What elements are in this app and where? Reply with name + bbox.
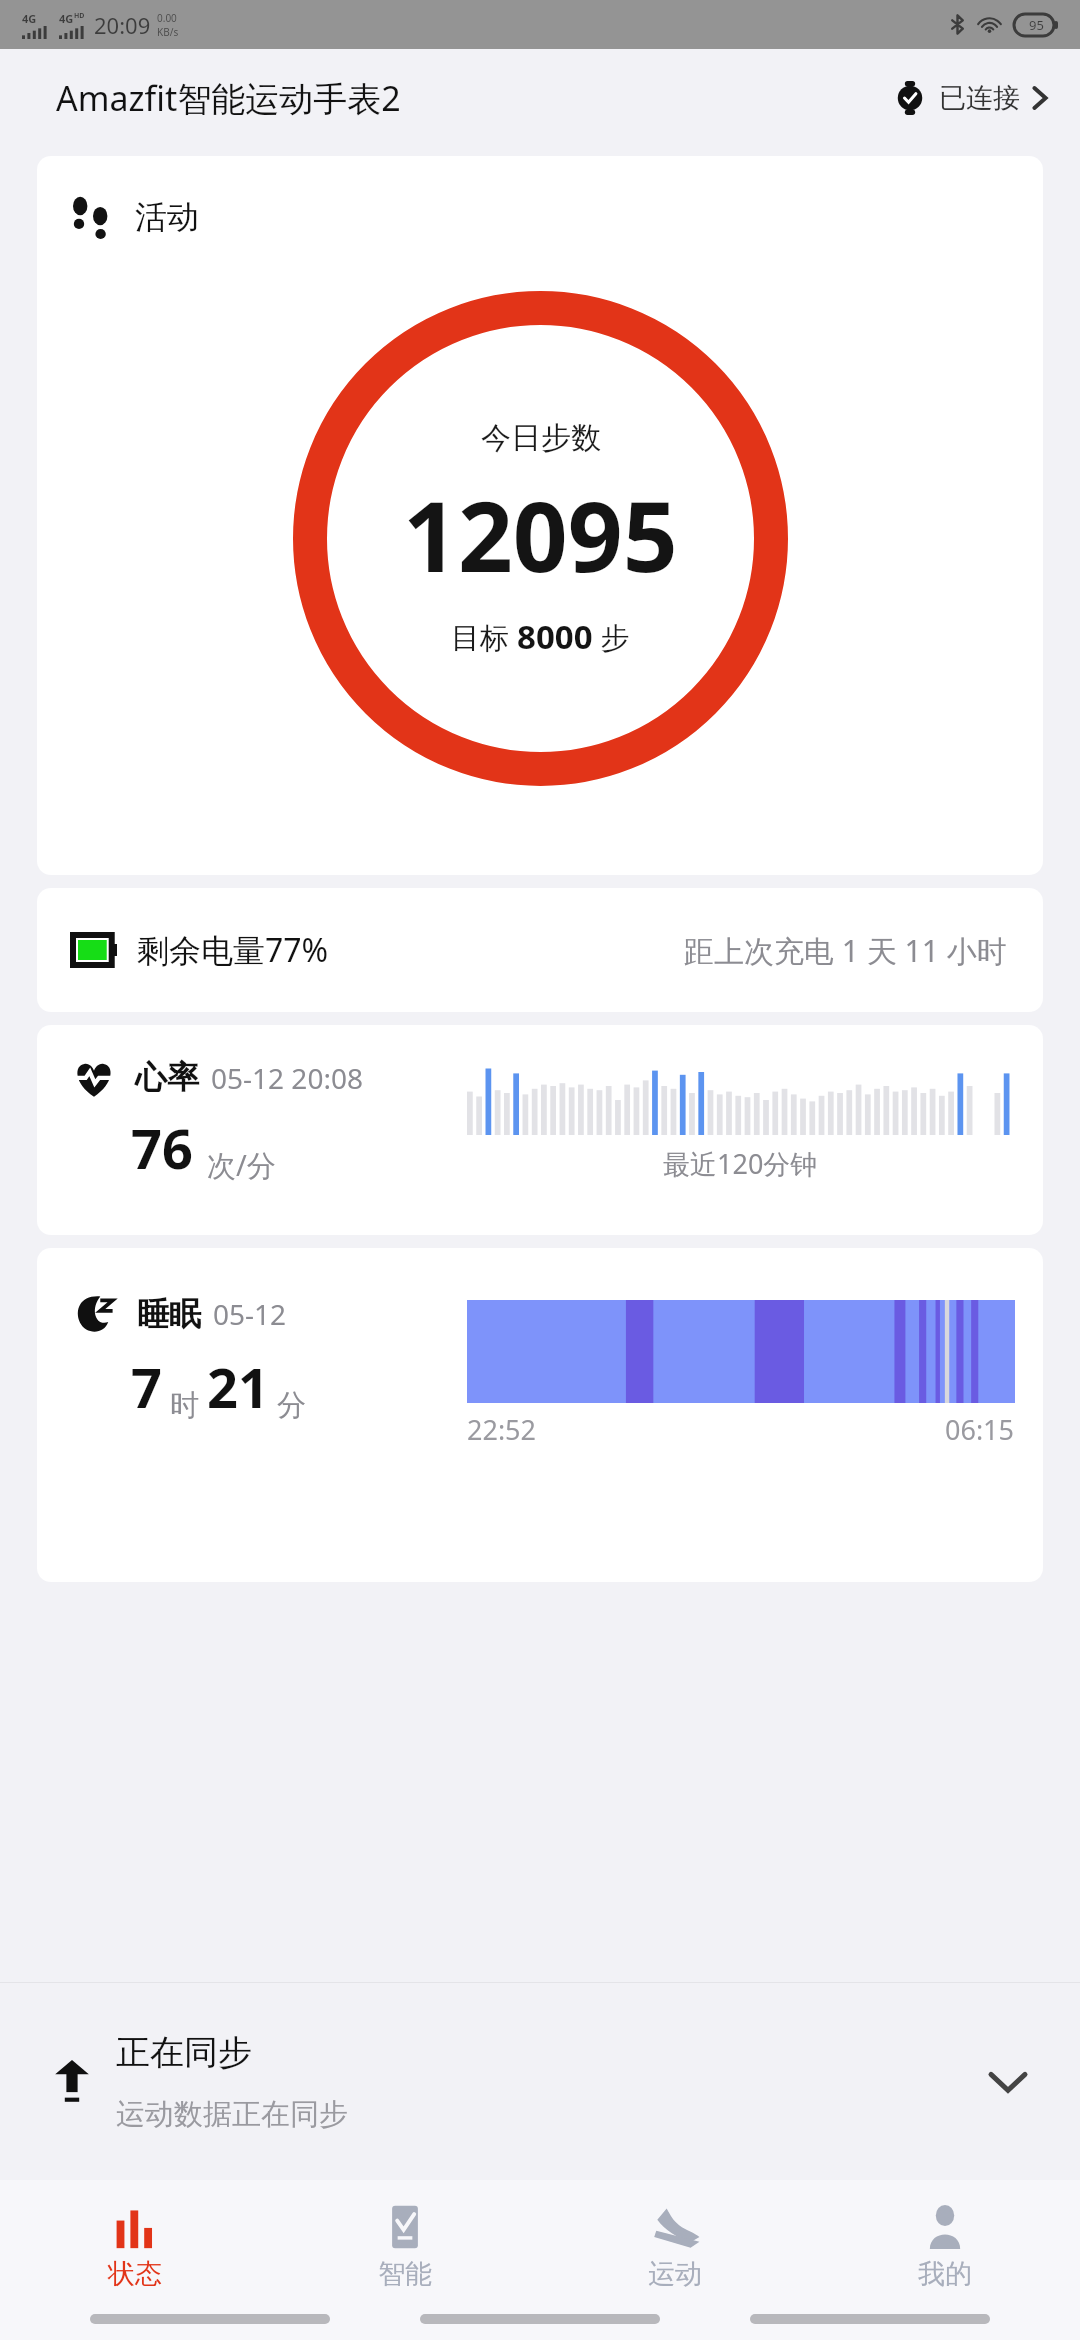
button[interactable]: 我的 <box>810 2180 1080 2314</box>
button[interactable]: Collapse <box>978 2052 1038 2112</box>
staticText: 运动 <box>648 2257 702 2291</box>
staticText: 今日步数 <box>481 419 601 457</box>
staticText: 次/分 <box>207 1145 276 1185</box>
staticText: 4G <box>59 11 74 26</box>
button[interactable]: 智能 <box>270 2180 540 2314</box>
staticText: 剩余电量77% <box>137 928 329 972</box>
button[interactable]: 已连接 <box>889 75 1052 121</box>
staticText: 智能 <box>378 2257 432 2291</box>
staticText: 运动数据正在同步 <box>116 2096 348 2133</box>
staticText: 分 <box>277 1387 306 1424</box>
staticText: 05-12 20:08 <box>211 1059 363 1097</box>
staticText: 12095 <box>403 469 678 600</box>
button[interactable]: 活动 <box>37 156 1043 875</box>
button[interactable]: 运动 <box>540 2180 810 2314</box>
staticText: 状态 <box>108 2257 162 2291</box>
button[interactable]: 状态 <box>0 2180 270 2314</box>
staticText: 步 <box>593 617 630 657</box>
staticText: 活动 <box>135 197 199 237</box>
staticText: KB/s <box>157 25 179 39</box>
staticText: 正在同步 <box>116 2031 252 2074</box>
staticText: 最近120分钟 <box>663 1145 818 1182</box>
button[interactable]: 剩余电量77% <box>37 888 1043 1012</box>
staticText: HD <box>74 11 85 21</box>
staticText: 心率 <box>135 1057 199 1097</box>
staticText: 95 <box>1029 16 1044 34</box>
staticText: 20:09 <box>94 10 151 40</box>
staticText: 已连接 <box>939 81 1020 115</box>
staticText: 0.00 <box>157 11 177 25</box>
staticText: 我的 <box>918 2257 972 2291</box>
staticText: 目标 <box>451 617 517 657</box>
staticText: 22:52 <box>467 1411 537 1448</box>
staticText: 05-12 <box>213 1295 287 1333</box>
staticText: 时 <box>170 1387 199 1424</box>
staticText: 06:15 <box>945 1411 1015 1448</box>
button[interactable]: 心率 <box>37 1025 1043 1235</box>
staticText: Amazfit智能运动手表2 <box>56 75 401 121</box>
staticText: 8000 <box>517 614 593 659</box>
staticText: 21 <box>207 1350 269 1424</box>
button[interactable]: 睡眠 <box>37 1248 1043 1582</box>
staticText: 7 <box>131 1350 162 1424</box>
staticText: 睡眠 <box>137 1294 201 1334</box>
button[interactable]: 正在同步 <box>0 1983 1080 2180</box>
staticText: 4G <box>22 11 37 26</box>
staticText: 距上次充电 1 天 11 小时 <box>684 930 1007 971</box>
staticText: 76 <box>131 1111 193 1185</box>
